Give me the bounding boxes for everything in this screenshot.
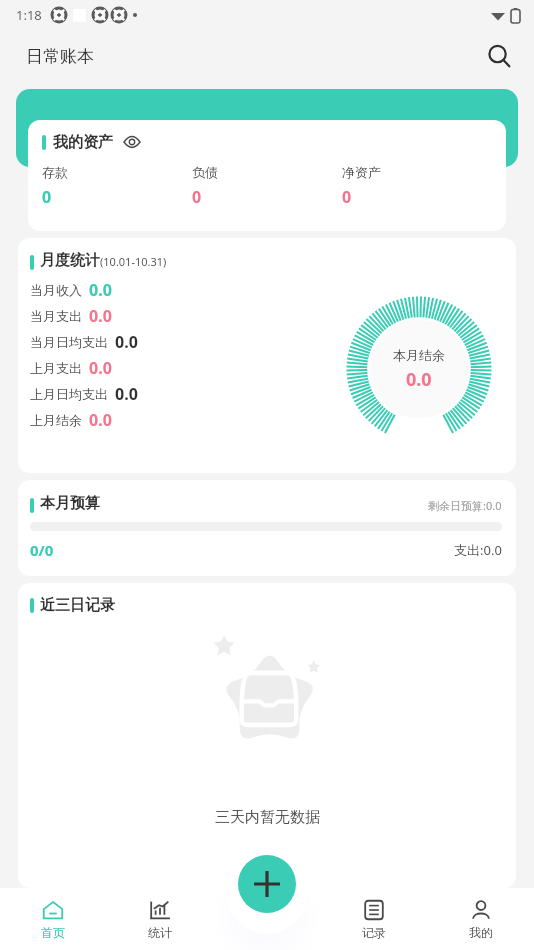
staticText: 当月收入 xyxy=(30,282,82,298)
staticText: 0 xyxy=(342,186,352,208)
staticText: 我的资产 xyxy=(53,133,113,152)
staticText: 统计 xyxy=(148,925,172,940)
staticText: 首页 xyxy=(41,925,65,940)
button[interactable]: 我的资产 xyxy=(28,120,506,231)
staticText: 我的 xyxy=(469,925,493,940)
staticText: 0.0 xyxy=(115,383,138,405)
staticText: 当月日均支出 xyxy=(30,334,108,350)
button[interactable]: Search xyxy=(478,35,520,77)
staticText: 三天内暂无数据 xyxy=(215,808,320,827)
button[interactable]: Toggle visibility xyxy=(122,132,142,152)
staticText: 上月日均支出 xyxy=(30,386,108,402)
staticText: 0 xyxy=(42,186,52,208)
button[interactable]: 统计 xyxy=(106,888,213,950)
staticText: 0.0 xyxy=(89,305,112,327)
staticText: 当月支出 xyxy=(30,308,82,324)
staticText: 0.0 xyxy=(89,279,112,301)
staticText: 0.0 xyxy=(115,331,138,353)
staticText: (10.01-10.31) xyxy=(100,254,167,269)
button[interactable]: 记录 xyxy=(320,888,427,950)
staticText: 1:18 xyxy=(16,6,42,24)
staticText: 月度统计 xyxy=(40,251,100,270)
staticText: 0.0 xyxy=(89,357,112,379)
button[interactable]: Add record xyxy=(238,855,296,913)
button[interactable]: 首页 xyxy=(0,888,106,950)
staticText: 近三日记录 xyxy=(40,596,115,615)
staticText: 剩余日预算:0.0 xyxy=(428,498,502,513)
staticText: 上月结余 xyxy=(30,412,82,428)
button[interactable]: 月度统计 xyxy=(18,238,516,473)
staticText: 本月预算 xyxy=(40,494,100,513)
staticText: 0.0 xyxy=(89,409,112,431)
button[interactable]: 本月预算 xyxy=(18,480,516,576)
button[interactable]: 我的 xyxy=(427,888,534,950)
staticText: 净资产 xyxy=(342,164,381,180)
button[interactable]: 近三日记录 xyxy=(18,583,516,888)
staticText: 存款 xyxy=(42,164,68,180)
staticText: 支出:0.0 xyxy=(454,541,502,559)
staticText: 上月支出 xyxy=(30,360,82,376)
staticText: 0 xyxy=(192,186,202,208)
staticText: 负债 xyxy=(192,164,218,180)
staticText: 0/0 xyxy=(30,540,54,560)
staticText: 记录 xyxy=(362,925,386,940)
staticText: 0.0 xyxy=(406,367,432,392)
staticText: 本月结余 xyxy=(393,347,445,363)
staticText: 日常账本 xyxy=(26,46,94,67)
